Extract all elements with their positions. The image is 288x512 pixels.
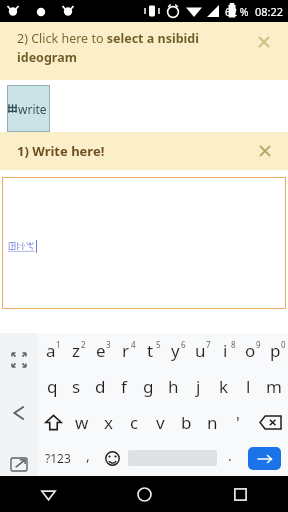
staticText: h: [168, 375, 179, 398]
button[interactable]: c: [121, 404, 147, 440]
button[interactable]: .: [219, 440, 241, 476]
staticText: d: [95, 375, 106, 398]
button[interactable]: write: [7, 85, 50, 132]
button[interactable]: x: [95, 404, 121, 440]
button[interactable]: Dismiss: [254, 32, 274, 52]
staticText: ꖸꖎꖌꖙ: [8, 241, 35, 252]
staticText: x: [104, 411, 113, 434]
staticText: 8: [231, 339, 236, 350]
button[interactable]: Resize keyboard: [6, 347, 32, 373]
staticText: s: [72, 375, 81, 398]
staticText: 2: [81, 339, 86, 350]
button[interactable]: ': [225, 404, 251, 440]
button[interactable]: n: [199, 404, 225, 440]
button[interactable]: Back: [5, 399, 33, 427]
staticText: y: [171, 339, 180, 362]
staticText: 08:22: [255, 4, 284, 19]
staticText: ,: [86, 446, 90, 465]
staticText: f: [121, 375, 127, 398]
button[interactable]: e: [88, 333, 113, 368]
staticText: write: [18, 101, 47, 117]
button[interactable]: Shift: [38, 404, 68, 440]
button[interactable]: a: [38, 333, 63, 368]
button[interactable]: d: [88, 368, 112, 404]
button[interactable]: j: [186, 368, 211, 404]
staticText: p: [270, 339, 281, 362]
staticText: 3: [106, 339, 111, 350]
button[interactable]: l: [236, 368, 261, 404]
staticText: m: [266, 375, 282, 398]
button[interactable]: r: [113, 333, 138, 368]
staticText: a: [46, 339, 56, 362]
staticText: b: [181, 411, 192, 434]
staticText: 2) Click here to select a nsibidi ideogr…: [17, 30, 244, 66]
button[interactable]: w: [68, 404, 95, 440]
staticText: r: [122, 339, 130, 362]
staticText: t: [147, 339, 154, 362]
button[interactable]: Home: [96, 476, 192, 512]
staticText: ?123: [45, 450, 71, 466]
button[interactable]: m: [261, 368, 286, 404]
button[interactable]: Recent apps: [192, 476, 288, 512]
button[interactable]: g: [136, 368, 161, 404]
button[interactable]: Dismiss: [255, 141, 275, 161]
button[interactable]: q: [40, 368, 64, 404]
staticText: 1: [56, 339, 61, 350]
button[interactable]: p: [263, 333, 288, 368]
staticText: o: [245, 339, 256, 362]
button[interactable]: Emoji: [99, 440, 126, 476]
staticText: l: [246, 375, 251, 398]
staticText: z: [72, 339, 80, 362]
staticText: 4: [131, 339, 136, 350]
staticText: c: [130, 411, 139, 434]
button[interactable]: f: [112, 368, 136, 404]
button[interactable]: ꖸꖎꖌꖙ: [2, 177, 286, 309]
button[interactable]: Backspace: [251, 404, 288, 440]
staticText: 9: [256, 339, 261, 350]
staticText: 7: [206, 339, 211, 350]
button[interactable]: ?123: [38, 440, 77, 476]
staticText: j: [196, 375, 201, 398]
staticText: q: [47, 375, 58, 398]
staticText: u: [195, 339, 206, 362]
button[interactable]: v: [147, 404, 173, 440]
staticText: i: [223, 339, 228, 362]
staticText: 1) Write here!: [17, 142, 105, 160]
staticText: .: [228, 446, 232, 465]
button[interactable]: 1) Write here!: [0, 132, 288, 170]
button[interactable]: k: [211, 368, 236, 404]
staticText: n: [207, 411, 218, 434]
staticText: v: [156, 411, 165, 434]
staticText: w: [75, 411, 89, 434]
button[interactable]: Enter: [241, 440, 288, 476]
staticText: 5: [156, 339, 161, 350]
button[interactable]: o: [238, 333, 263, 368]
button[interactable]: y: [163, 333, 188, 368]
button[interactable]: h: [161, 368, 186, 404]
staticText: ': [236, 411, 240, 434]
button[interactable]: Back: [0, 476, 96, 512]
staticText: 0: [281, 339, 286, 350]
staticText: 62 %: [225, 5, 249, 19]
staticText: k: [219, 375, 229, 398]
button[interactable]: ,: [77, 440, 99, 476]
button[interactable]: z: [63, 333, 88, 368]
staticText: e: [96, 339, 106, 362]
button[interactable]: t: [138, 333, 163, 368]
button[interactable]: Floating keyboard: [6, 453, 32, 476]
staticText: g: [143, 375, 154, 398]
button[interactable]: 2) Click here to select a nsibidi ideogr…: [0, 22, 288, 80]
button[interactable]: Space: [126, 440, 219, 476]
button[interactable]: s: [64, 368, 88, 404]
button[interactable]: i: [213, 333, 238, 368]
button[interactable]: u: [188, 333, 213, 368]
staticText: 6: [181, 339, 186, 350]
button[interactable]: b: [173, 404, 199, 440]
